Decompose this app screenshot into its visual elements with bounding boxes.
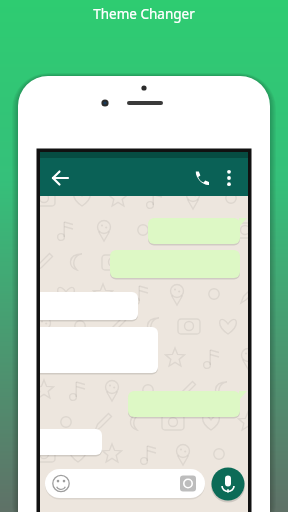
button[interactable]: Back [41,157,69,185]
button[interactable]: Voice message [211,468,245,502]
button[interactable]: Camera [178,473,204,499]
button[interactable]: More options [223,157,245,185]
button[interactable]: Type a message [44,470,204,502]
button[interactable]: Call [194,157,220,185]
staticText: Theme Changer [0,5,288,25]
